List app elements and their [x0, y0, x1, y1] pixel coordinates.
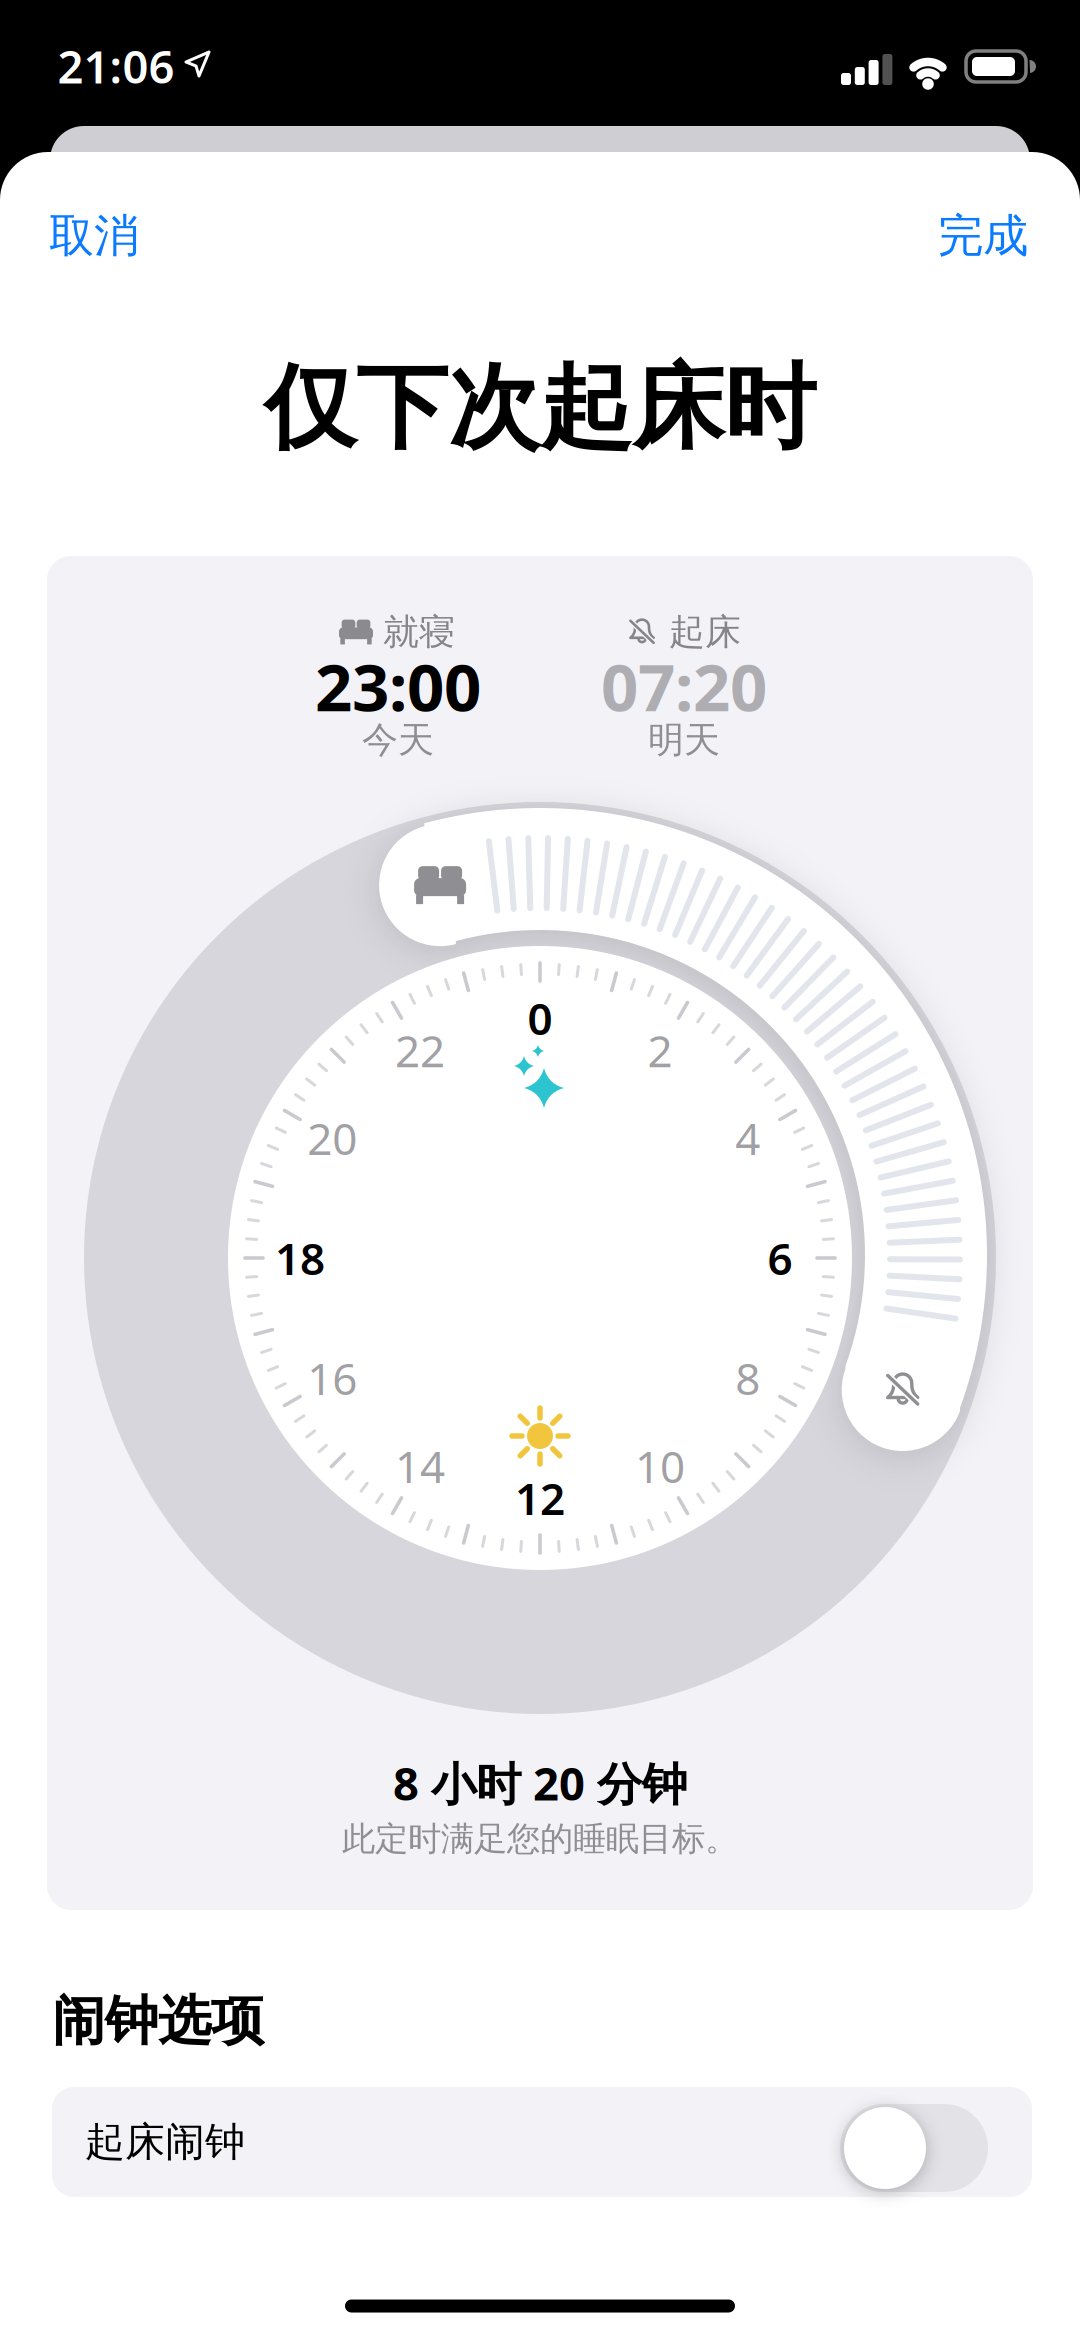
staticText: 2: [647, 1021, 672, 1079]
staticText: 16: [307, 1349, 357, 1407]
staticText: 12: [515, 1469, 565, 1527]
staticText: 21:06: [57, 36, 174, 96]
staticText: 0: [527, 989, 552, 1047]
staticText: 18: [275, 1229, 325, 1287]
staticText: 4: [735, 1109, 760, 1167]
staticText: 6: [767, 1229, 792, 1287]
staticText: 今天: [362, 718, 434, 762]
staticText: 闹钟选项: [52, 1988, 264, 2054]
staticText: 起床: [669, 610, 741, 654]
button[interactable]: [840, 2104, 988, 2192]
staticText: 07:20: [601, 643, 767, 729]
staticText: 完成: [938, 208, 1028, 264]
staticText: 此定时满足您的睡眠目标。: [342, 1818, 738, 1859]
staticText: 取消: [49, 208, 139, 264]
staticText: 8 小时 20 分钟: [393, 1753, 687, 1813]
staticText: 20: [307, 1109, 357, 1167]
staticText: 起床闹钟: [85, 2117, 245, 2166]
staticText: 14: [395, 1437, 445, 1495]
staticText: 就寝: [383, 610, 455, 654]
button[interactable]: 取消: [49, 208, 139, 264]
staticText: 23:00: [315, 643, 481, 729]
staticText: 仅下次起床时: [264, 351, 816, 464]
staticText: 10: [635, 1437, 685, 1495]
button[interactable]: 完成: [938, 208, 1028, 264]
staticText: 8: [735, 1349, 760, 1407]
staticText: 明天: [648, 718, 720, 762]
staticText: 22: [395, 1021, 445, 1079]
